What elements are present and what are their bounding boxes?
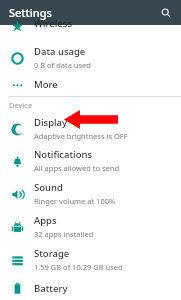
staticText: 0 B of data used: [34, 60, 91, 70]
other: Display: [11, 123, 24, 136]
button[interactable]: Data usage: [0, 43, 181, 72]
staticText: 32 apps installed: [34, 229, 94, 239]
button[interactable]: Wireless: [0, 25, 181, 43]
button[interactable]: Storage: [0, 243, 181, 276]
button[interactable]: Search: [157, 4, 175, 22]
other: Data usage: [11, 52, 24, 65]
button[interactable]: More: [0, 72, 181, 96]
other: Apps: [11, 221, 24, 234]
staticText: 1.59 GB of 10.29 GB used: [34, 262, 123, 272]
other: Wireless: [11, 20, 24, 33]
staticText: More: [34, 78, 58, 91]
staticText: Battery: [34, 282, 68, 295]
staticText: Apps: [34, 214, 57, 227]
staticText: Notifications: [34, 148, 93, 161]
other: Sound: [11, 188, 24, 201]
staticText: Wireless: [34, 17, 73, 30]
other: Storage: [11, 254, 24, 267]
other: Battery: [11, 282, 24, 295]
button[interactable]: Sound: [0, 177, 181, 210]
staticText: Settings: [9, 5, 52, 20]
staticText: Ringer volume at 100%: [34, 196, 116, 206]
button[interactable]: Apps: [0, 210, 181, 243]
button[interactable]: Display: [0, 113, 181, 144]
other: More: [11, 78, 24, 91]
button[interactable]: Notifications: [0, 144, 181, 177]
staticText: All apps allowed to send: [34, 163, 120, 173]
staticText: Device: [9, 100, 33, 110]
staticText: Storage: [34, 247, 70, 260]
staticText: Sound: [34, 181, 63, 194]
button[interactable]: Battery: [0, 276, 181, 300]
staticText: Adaptive brightness is OFF: [34, 131, 128, 141]
other: Notifications: [11, 155, 24, 168]
staticText: Display: [34, 116, 68, 129]
staticText: Data usage: [34, 45, 86, 58]
